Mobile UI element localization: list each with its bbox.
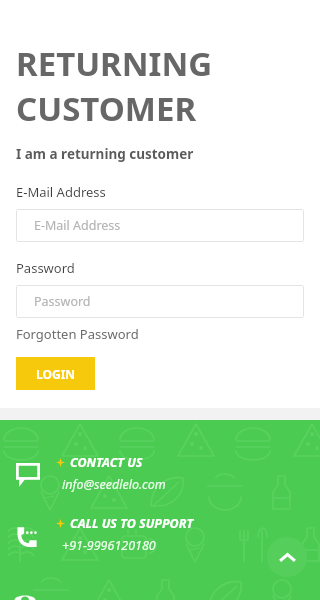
staticText: E-Mail Address bbox=[16, 183, 106, 201]
staticText: E-Mail Address bbox=[34, 217, 121, 234]
button[interactable]: Forgotten Password bbox=[16, 325, 139, 343]
button[interactable]: E-Mail Address bbox=[16, 209, 304, 242]
staticText: RETURNING bbox=[16, 41, 213, 86]
staticText: LOGIN bbox=[36, 366, 76, 382]
staticText: Forgotten Password bbox=[16, 325, 139, 343]
button[interactable]: Call us bbox=[0, 513, 320, 559]
staticText: CALL US TO SUPPORT bbox=[70, 515, 194, 532]
button[interactable]: Scroll to top bbox=[267, 537, 307, 577]
staticText: CONTACT US bbox=[70, 454, 143, 471]
other: Call us bbox=[0, 513, 56, 559]
staticText: +91-9996120180 bbox=[62, 537, 156, 554]
button[interactable]: Password bbox=[16, 285, 304, 318]
button[interactable]: Message us bbox=[0, 452, 320, 498]
staticText: Password bbox=[16, 259, 75, 277]
staticText: info@seedlelo.com bbox=[62, 476, 166, 493]
other: Message us bbox=[0, 452, 56, 498]
staticText: Password bbox=[34, 293, 91, 310]
staticText: CUSTOMER bbox=[16, 86, 197, 131]
button[interactable]: LOGIN bbox=[16, 357, 95, 390]
staticText: I am a returning customer bbox=[16, 145, 194, 163]
button[interactable]: Our location bbox=[14, 592, 36, 600]
